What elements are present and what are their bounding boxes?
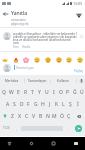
button[interactable]: Emoji bbox=[77, 57, 83, 63]
staticText: Ğ bbox=[73, 89, 77, 96]
button[interactable]: Home bbox=[26, 138, 37, 149]
button[interactable]: Ğ bbox=[71, 86, 78, 98]
staticText: W bbox=[9, 89, 14, 96]
staticText: P bbox=[66, 89, 70, 96]
staticText: . bbox=[67, 126, 68, 131]
button[interactable]: Paylaş bbox=[74, 69, 83, 73]
button[interactable]: T bbox=[29, 86, 36, 98]
staticText: Ş bbox=[69, 101, 72, 108]
staticText: com bbox=[13, 41, 19, 44]
button[interactable]: O bbox=[57, 86, 64, 98]
staticText: X bbox=[18, 113, 22, 120]
button[interactable]: Hide keyboard bbox=[4, 138, 15, 149]
staticText: K bbox=[55, 101, 59, 108]
button[interactable]: S bbox=[11, 98, 18, 110]
staticText: İ bbox=[77, 101, 79, 108]
button[interactable]: Emoji bbox=[45, 57, 51, 63]
button[interactable]: B bbox=[37, 110, 44, 122]
staticText: B bbox=[39, 113, 43, 120]
button[interactable]: I bbox=[50, 86, 57, 98]
button[interactable]: Tamamlayan bbox=[25, 75, 50, 86]
button[interactable]: P bbox=[64, 86, 71, 98]
staticText: Q bbox=[2, 89, 6, 96]
staticText: acarbilen @onadisor · etkinliğin yerleşk… bbox=[13, 32, 77, 35]
staticText: Ö bbox=[60, 113, 64, 120]
staticText: A bbox=[6, 101, 10, 108]
button[interactable]: K bbox=[53, 98, 60, 110]
staticText: M bbox=[52, 113, 57, 120]
staticText: D bbox=[20, 101, 24, 108]
staticText: O bbox=[59, 89, 63, 96]
button[interactable]: ?123 bbox=[0, 122, 12, 134]
button[interactable]: Crown emoji bbox=[2, 57, 8, 63]
button[interactable]: Emoji bbox=[34, 57, 40, 63]
button[interactable]: İ bbox=[74, 98, 81, 110]
button[interactable]: Merhaba bbox=[0, 75, 24, 86]
button[interactable]: C bbox=[23, 110, 30, 122]
button[interactable]: Z bbox=[9, 110, 16, 122]
button[interactable]: Kullanıcı bbox=[51, 75, 76, 86]
staticText: G bbox=[34, 101, 38, 108]
button[interactable]: V bbox=[30, 110, 37, 122]
button[interactable]: Emoji bbox=[56, 57, 62, 63]
button[interactable]: U bbox=[43, 86, 50, 98]
staticText: ?123 bbox=[3, 126, 10, 130]
button[interactable]: R bbox=[22, 86, 29, 98]
button[interactable]: Back bbox=[0, 9, 11, 19]
staticText: Z bbox=[11, 113, 14, 120]
button[interactable]: D bbox=[18, 98, 25, 110]
staticText: U bbox=[45, 89, 49, 96]
button[interactable]: Blossom emoji bbox=[23, 57, 29, 63]
button[interactable]: Ş bbox=[67, 98, 74, 110]
staticText: Kullanıcı bbox=[57, 79, 70, 83]
button[interactable]: Q bbox=[0, 86, 8, 98]
button[interactable]: Fire emoji bbox=[13, 57, 19, 63]
button[interactable]: Recents bbox=[48, 138, 59, 149]
staticText: E bbox=[17, 89, 20, 96]
staticText: Merhaba bbox=[5, 79, 19, 83]
staticText: kısa ve alkollü fonksiyonel alkolfonksiy… bbox=[13, 38, 71, 41]
button[interactable]: J bbox=[46, 98, 53, 110]
button[interactable]: F bbox=[25, 98, 32, 110]
staticText: H bbox=[41, 101, 45, 108]
staticText: Tüm bbox=[13, 45, 19, 49]
button[interactable]: Send bbox=[75, 125, 82, 132]
button[interactable]: X bbox=[16, 110, 23, 122]
button[interactable]: Ü bbox=[78, 86, 85, 98]
staticText: Ü bbox=[80, 89, 84, 96]
button[interactable]: Voice input bbox=[77, 75, 85, 86]
staticText: V bbox=[32, 113, 36, 120]
staticText: S bbox=[13, 101, 16, 108]
staticText: etkinlik ve paylaşım alanı tasarımı yük … bbox=[13, 35, 77, 38]
button[interactable]: G bbox=[32, 98, 39, 110]
button[interactable]: , bbox=[12, 122, 21, 134]
button[interactable]: Switch keyboard bbox=[70, 138, 81, 149]
staticText: Paylaş bbox=[74, 69, 83, 73]
button[interactable]: M bbox=[51, 110, 58, 122]
button[interactable]: Ö bbox=[58, 110, 65, 122]
button[interactable]: E bbox=[15, 86, 22, 98]
button[interactable]: N bbox=[44, 110, 51, 122]
button[interactable]: More options bbox=[78, 32, 85, 43]
staticText: T bbox=[31, 89, 34, 96]
button[interactable]: H bbox=[39, 98, 46, 110]
staticText: Ç bbox=[67, 113, 71, 120]
button[interactable]: A bbox=[4, 98, 11, 110]
staticText: , bbox=[16, 126, 17, 131]
button[interactable]: L bbox=[60, 98, 67, 110]
staticText: Yanıtını yaz bbox=[16, 65, 34, 70]
staticText: 13:05 bbox=[73, 1, 83, 6]
button[interactable]: Y bbox=[36, 86, 43, 98]
button[interactable]: Backspace bbox=[72, 110, 85, 122]
staticText: I bbox=[53, 89, 55, 96]
staticText: F bbox=[27, 101, 30, 108]
button[interactable]: W bbox=[8, 86, 15, 98]
button[interactable]: Ç bbox=[65, 110, 72, 122]
button[interactable]: Twitter bbox=[73, 9, 85, 22]
button[interactable]: Emoji bbox=[66, 57, 72, 63]
staticText: Yanıtla bbox=[11, 10, 28, 17]
staticText: consectetur adipiscing elit informationa… bbox=[11, 18, 34, 26]
button[interactable]: Shift bbox=[0, 110, 9, 122]
